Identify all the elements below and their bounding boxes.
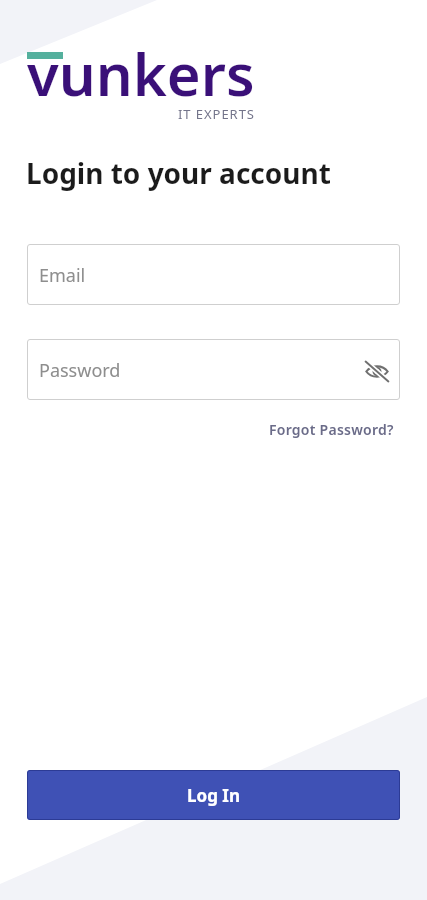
staticText: Login to your account [26, 154, 331, 192]
button[interactable]: Password [27, 339, 400, 400]
button[interactable]: Email [27, 244, 400, 305]
staticText: IT EXPERTS [178, 105, 255, 123]
button[interactable]: Log In [27, 770, 400, 820]
staticText: Password [39, 358, 121, 383]
button[interactable]: Forgot Password? [269, 420, 394, 439]
staticText: Email [39, 263, 86, 288]
staticText: Log In [187, 784, 240, 807]
staticText: vunkers [27, 34, 255, 113]
button[interactable]: Show password [357, 351, 397, 391]
staticText: Forgot Password? [269, 420, 394, 439]
